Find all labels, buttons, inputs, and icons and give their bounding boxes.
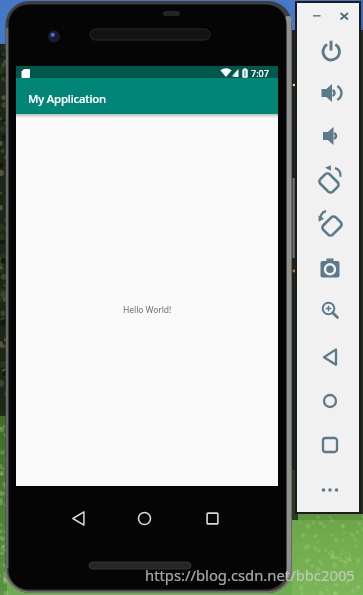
button[interactable] bbox=[315, 208, 347, 240]
button[interactable] bbox=[64, 504, 93, 533]
button[interactable] bbox=[314, 474, 346, 506]
button[interactable] bbox=[309, 8, 325, 24]
button[interactable] bbox=[314, 341, 346, 373]
button[interactable] bbox=[314, 429, 346, 461]
button[interactable] bbox=[315, 35, 347, 67]
button[interactable] bbox=[336, 8, 352, 24]
staticText: My Application bbox=[28, 91, 107, 106]
staticText: https://blog.csdn.net/bbc2005 bbox=[145, 565, 355, 585]
button[interactable] bbox=[315, 120, 347, 152]
button[interactable] bbox=[314, 253, 346, 285]
button[interactable] bbox=[314, 165, 346, 197]
button[interactable] bbox=[198, 504, 227, 533]
button[interactable] bbox=[315, 77, 347, 109]
button[interactable] bbox=[314, 385, 346, 417]
staticText: 7:07 bbox=[251, 67, 269, 79]
button[interactable] bbox=[130, 504, 159, 533]
staticText: Hello World! bbox=[123, 304, 172, 316]
button[interactable] bbox=[314, 294, 346, 326]
